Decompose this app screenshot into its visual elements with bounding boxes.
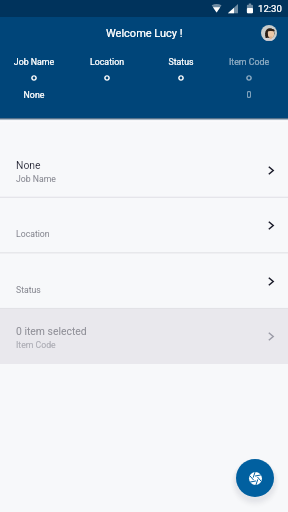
staticText: Welcome Lucy ! [106,27,183,40]
staticText: Location [16,229,50,239]
staticText: None [0,90,70,100]
button[interactable]: Profile [261,25,277,41]
button[interactable]: Location [0,197,288,253]
staticText: Job Name [16,174,56,184]
staticText: Item Code [16,340,56,350]
staticText: Job Name [0,57,70,67]
button[interactable]: None [0,142,288,198]
button[interactable]: Location [71,49,143,101]
button[interactable]: Scan barcode [236,459,274,497]
button[interactable]: Status [0,253,288,309]
staticText: Location [71,57,143,67]
staticText: 0 item selected [16,325,87,337]
staticText: Status [16,285,41,295]
staticText: Status [145,57,217,67]
button[interactable]: Item Code [213,49,285,101]
staticText: None [16,159,41,171]
button[interactable]: Status [145,49,217,101]
staticText: Item Code [213,57,285,67]
button[interactable]: 0 item selected [0,308,288,364]
staticText: 0 [213,90,285,100]
button[interactable]: Job Name [0,49,70,101]
staticText: 12:30 [258,3,282,14]
